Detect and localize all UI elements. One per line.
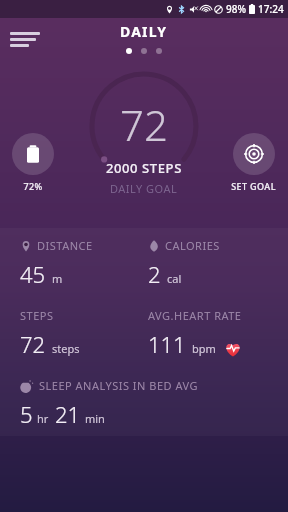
- staticText: DAILY GOAL: [110, 181, 178, 196]
- staticText: 72: [20, 329, 46, 359]
- button[interactable]: DISTANCE: [0, 228, 288, 298]
- staticText: steps: [52, 341, 80, 356]
- staticText: bpm: [192, 341, 216, 356]
- staticText: 17:24: [258, 2, 284, 16]
- staticText: SET GOAL: [231, 180, 276, 192]
- button[interactable]: SLEEP ANALYSIS IN BED AVG: [0, 368, 288, 436]
- staticText: AVG.HEART RATE: [148, 308, 242, 323]
- staticText: DISTANCE: [37, 238, 93, 253]
- staticText: hr: [37, 411, 49, 426]
- staticText: 72: [120, 96, 168, 153]
- staticText: min: [85, 411, 105, 426]
- staticText: 72%: [23, 180, 43, 192]
- button[interactable]: STEPS: [0, 298, 288, 368]
- staticText: cal: [167, 271, 182, 286]
- staticText: 98%: [226, 2, 246, 16]
- staticText: 2: [148, 259, 161, 289]
- staticText: 5: [20, 399, 33, 429]
- staticText: 111: [148, 329, 186, 359]
- staticText: CALORIES: [165, 238, 220, 253]
- button[interactable]: Open menu: [10, 24, 44, 52]
- staticText: DAILY: [120, 22, 168, 41]
- staticText: 45: [20, 259, 46, 289]
- staticText: m: [52, 271, 63, 286]
- staticText: 21: [55, 399, 81, 429]
- staticText: 2000 STEPS: [106, 159, 182, 177]
- button[interactable]: Set goal: [231, 133, 276, 192]
- button[interactable]: Battery level: [12, 133, 54, 192]
- staticText: STEPS: [20, 308, 54, 323]
- staticText: SLEEP ANALYSIS IN BED AVG: [39, 378, 198, 393]
